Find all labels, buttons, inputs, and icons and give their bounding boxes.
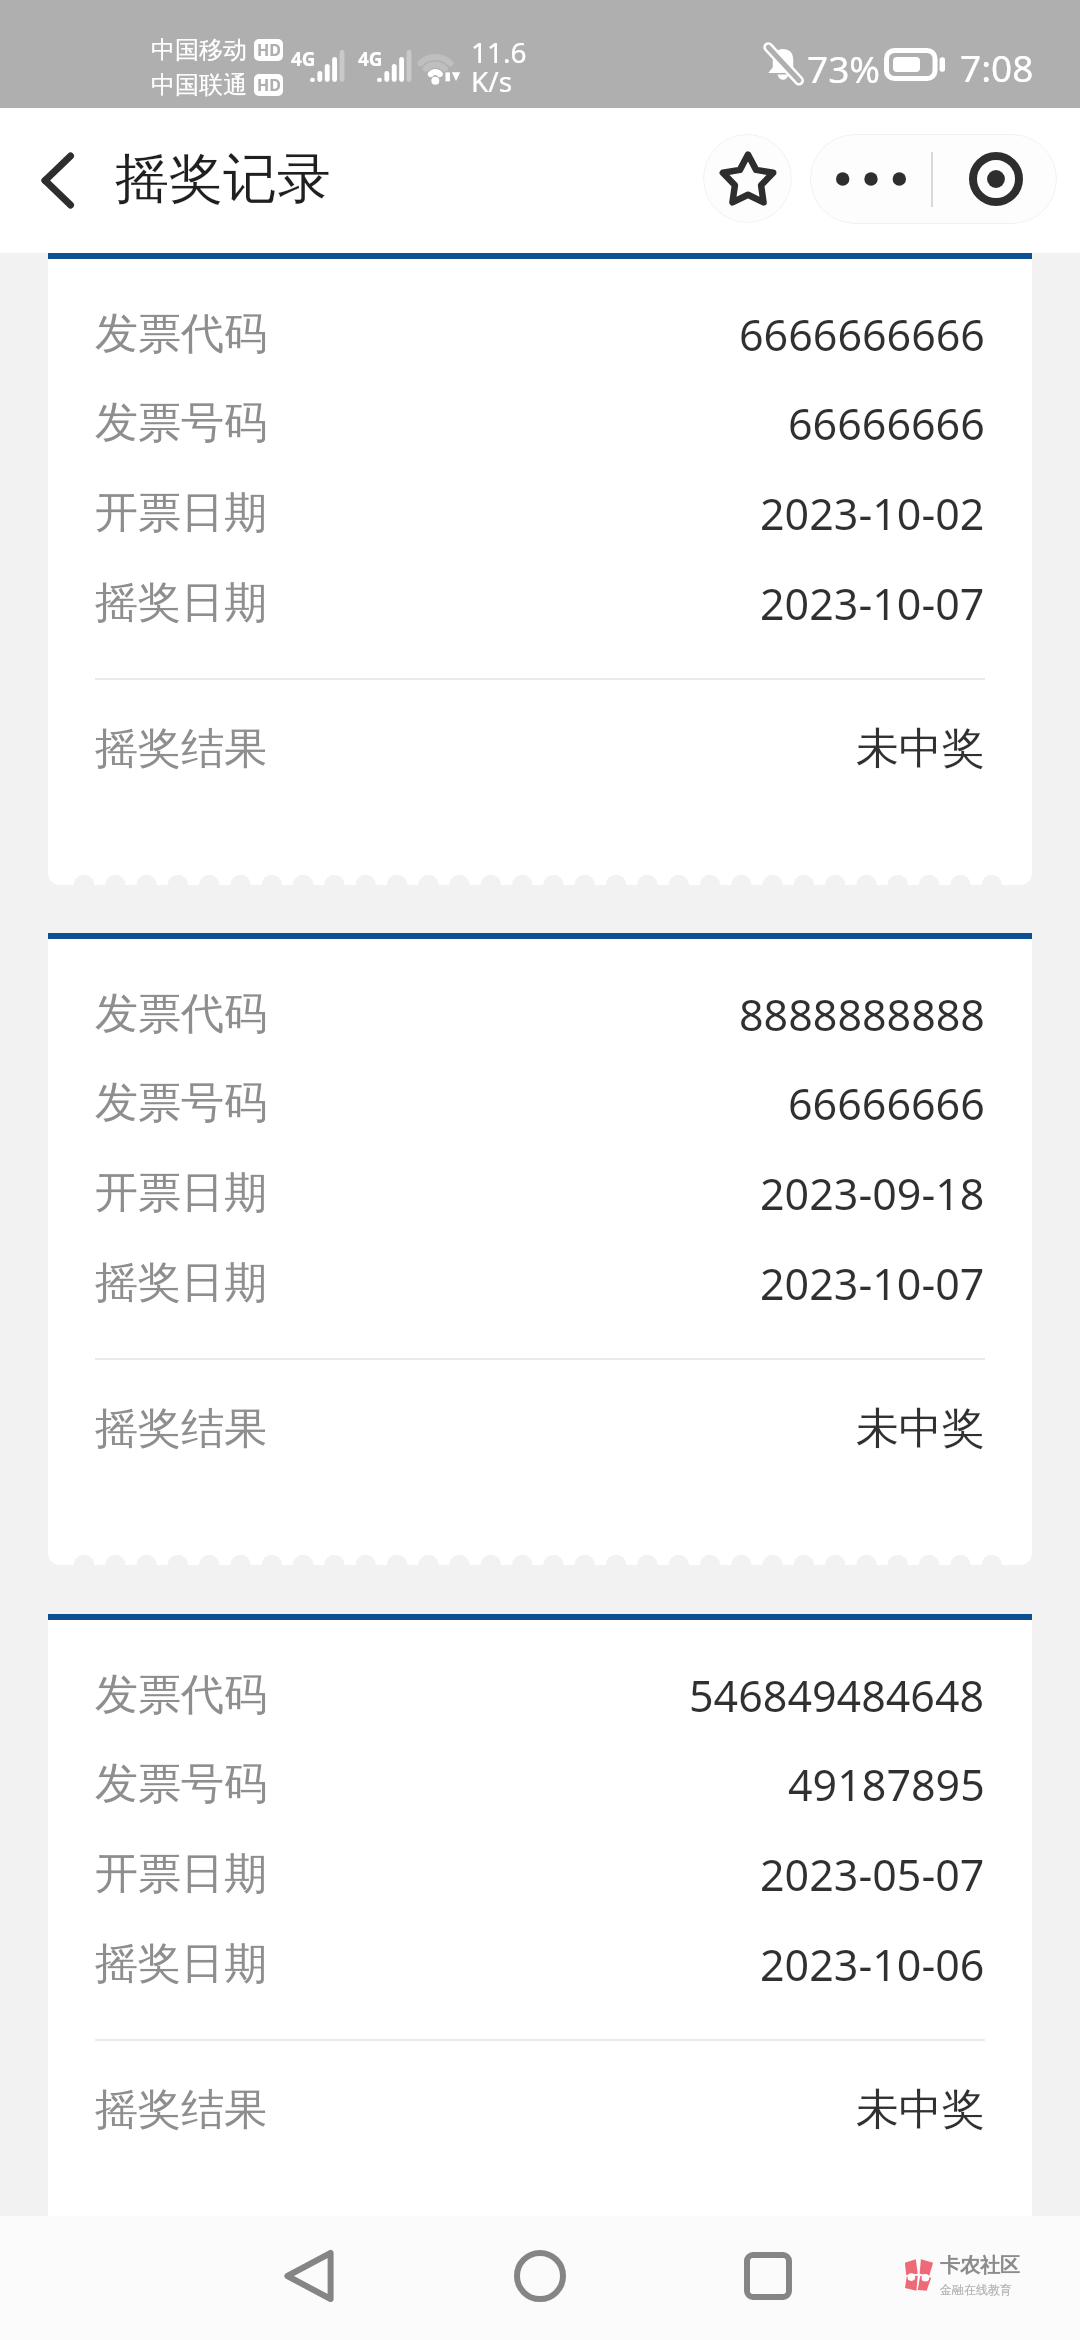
button[interactable]: Back [263,2230,355,2322]
button[interactable]: Home [494,2230,586,2322]
staticText: 卡农社区 [940,2253,1020,2278]
staticText: 未中奖 [856,2083,985,2137]
staticText: 2023-10-02 [760,484,985,543]
staticText: 摇奖记录 [115,145,331,213]
button[interactable]: Close mini program [934,134,1057,224]
staticText: 摇奖结果 [95,1402,267,1456]
staticText: 摇奖日期 [95,1256,267,1310]
staticText: 546849484648 [689,1666,985,1725]
button[interactable]: More options [810,134,932,224]
staticText: 66666666 [788,1074,985,1133]
staticText: 11.6 [471,33,527,71]
staticText: 2023-10-07 [760,574,985,633]
staticText: 开票日期 [95,486,267,540]
staticText: 发票号码 [95,396,267,450]
staticText: 66666666 [788,394,985,453]
staticText: 发票号码 [95,1757,267,1811]
staticText: 中国移动 [151,35,247,65]
staticText: K/s [471,62,513,100]
staticText: 2023-10-07 [760,1254,985,1313]
button[interactable]: 发票代码 [48,933,1032,1565]
staticText: 摇奖结果 [95,722,267,776]
staticText: 2023-05-07 [760,1845,985,1904]
staticText: 发票代码 [95,307,267,361]
staticText: 开票日期 [95,1847,267,1901]
staticText: 摇奖结果 [95,2083,267,2137]
button[interactable]: Favorite [703,134,792,223]
staticText: 49187895 [788,1755,985,1814]
button[interactable]: 发票代码 [48,253,1032,885]
staticText: HD [257,74,281,96]
button[interactable]: Recent apps [722,2230,814,2322]
staticText: 未中奖 [856,1402,985,1456]
staticText: HD [257,39,281,61]
staticText: 73% [807,43,881,93]
staticText: 未中奖 [856,722,985,776]
staticText: 4G [358,46,383,72]
staticText: 2023-10-06 [760,1935,985,1994]
staticText: 发票号码 [95,1076,267,1130]
button[interactable]: 发票代码 [48,1614,1032,2246]
staticText: 中国联通 [151,70,247,100]
staticText: 8888888888 [739,985,985,1044]
staticText: 发票代码 [95,987,267,1041]
staticText: 发票代码 [95,1668,267,1722]
staticText: 2023-09-18 [760,1164,985,1223]
staticText: 摇奖日期 [95,576,267,630]
staticText: 开票日期 [95,1166,267,1220]
staticText: 4G [291,46,316,72]
button[interactable]: Back [11,134,103,226]
staticText: 7:08 [960,42,1034,92]
staticText: 摇奖日期 [95,1937,267,1991]
staticText: 6666666666 [739,305,985,364]
staticText: 金融在线教育 [940,2282,1012,2297]
